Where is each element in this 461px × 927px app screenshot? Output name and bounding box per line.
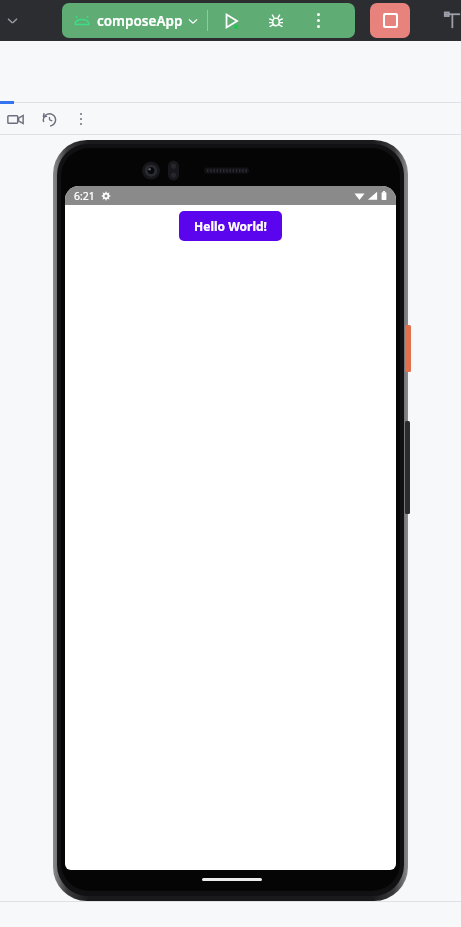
button[interactable]: More options <box>68 106 94 132</box>
button[interactable]: composeApp <box>62 3 207 38</box>
button[interactable]: More run options <box>298 3 338 38</box>
button[interactable]: Record screen <box>0 104 30 134</box>
button[interactable]: History <box>34 104 64 134</box>
button[interactable]: Collapse <box>0 8 24 32</box>
button[interactable]: Layout inspector <box>440 8 461 32</box>
staticText: 6:21 <box>74 189 95 203</box>
button[interactable]: Stop <box>370 3 410 38</box>
staticText: Hello World! <box>194 218 267 234</box>
button[interactable]: Debug <box>253 3 298 38</box>
button[interactable]: Run <box>208 3 253 38</box>
button[interactable]: Hello World! <box>179 211 282 241</box>
staticText: composeApp <box>97 12 183 30</box>
